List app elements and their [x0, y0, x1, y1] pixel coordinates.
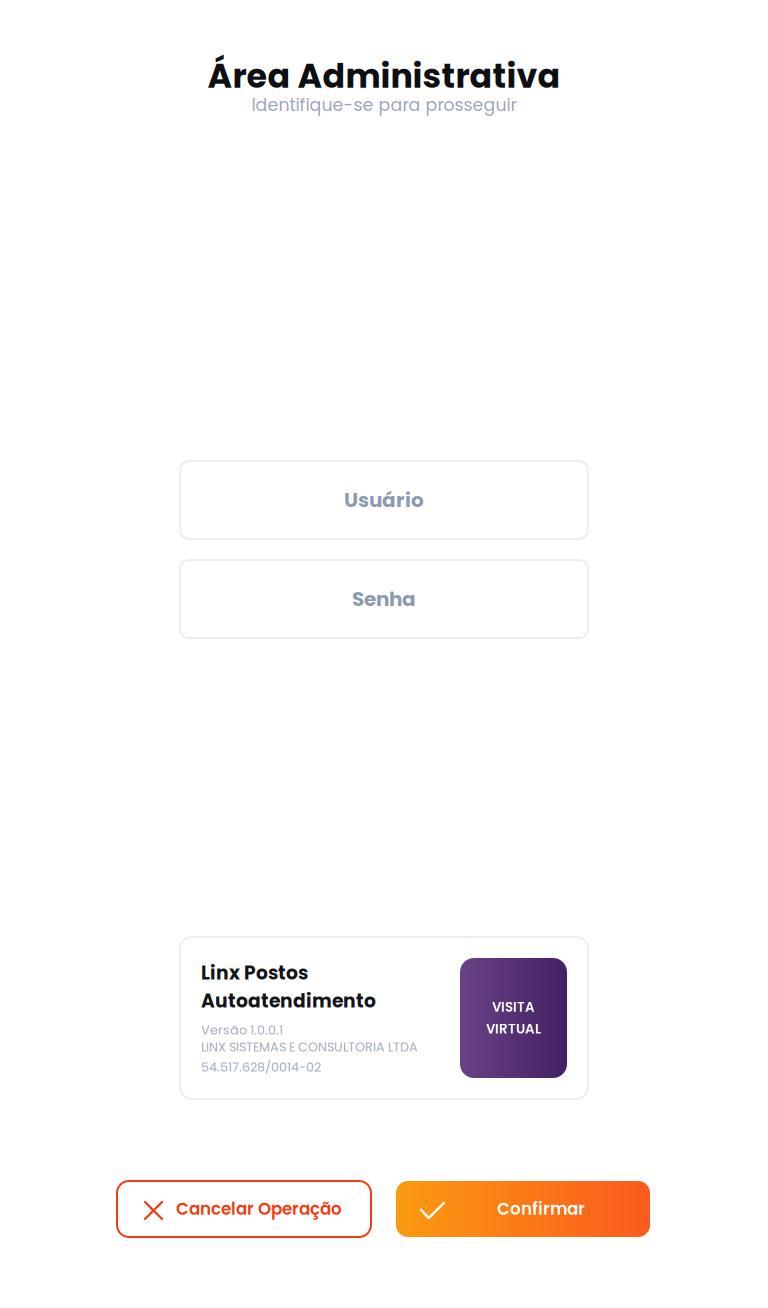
staticText: Identifique-se para prosseguir — [251, 93, 516, 117]
staticText: Usuário — [344, 486, 424, 514]
staticText: LINX SISTEMAS E CONSULTORIA LTDA — [201, 1038, 418, 1056]
button[interactable]: VISITA — [460, 958, 567, 1078]
staticText: Senha — [352, 585, 416, 613]
button[interactable]: Confirmar — [396, 1181, 650, 1237]
staticText: 54.517.628/0014-02 — [201, 1058, 321, 1076]
staticText: Linx Postos — [201, 960, 308, 986]
staticText: Área Administrativa — [207, 53, 560, 99]
button[interactable]: Cancelar Operação — [117, 1181, 371, 1237]
staticText: Autoatendimento — [201, 988, 376, 1014]
staticText: Versão 1.0.0.1 — [201, 1021, 283, 1039]
staticText: VIRTUAL — [486, 1019, 541, 1038]
staticText: Confirmar — [497, 1197, 585, 1221]
button[interactable]: Senha — [180, 560, 588, 638]
staticText: VISITA — [492, 998, 535, 1016]
button[interactable]: Usuário — [180, 461, 588, 539]
staticText: Cancelar Operação — [176, 1197, 342, 1221]
